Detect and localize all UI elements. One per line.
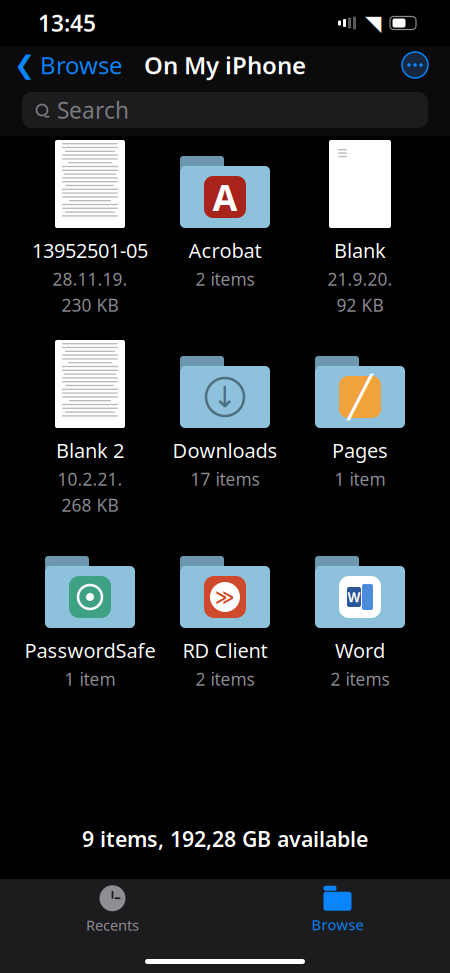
button[interactable]: Blank 2 — [22, 336, 157, 536]
staticText: 10.2.21. — [57, 468, 122, 491]
button[interactable]: PasswordSafe — [22, 536, 157, 736]
staticText: On My iPhone — [144, 49, 306, 81]
staticText: W — [347, 588, 360, 606]
staticText: Blank — [334, 237, 386, 264]
staticText: PasswordSafe — [24, 637, 155, 664]
staticText: Word — [335, 637, 385, 664]
staticText: RD Client — [182, 637, 267, 664]
staticText: Acrobat — [188, 237, 261, 264]
staticText: 17 items — [190, 468, 259, 491]
button[interactable]: A — [157, 136, 292, 336]
staticText: 2 items — [330, 668, 389, 691]
staticText: ↓ — [212, 380, 237, 414]
button[interactable]: More options — [402, 45, 450, 85]
staticText: 268 KB — [61, 494, 118, 517]
staticText: 13:45 — [38, 8, 96, 38]
staticText: 2 items — [195, 268, 254, 291]
staticText: Search — [57, 95, 129, 125]
staticText: Browse — [311, 915, 363, 934]
button[interactable]: ≫ — [157, 536, 292, 736]
staticText: 92 KB — [336, 294, 383, 317]
staticText: 2 items — [195, 668, 254, 691]
staticText: 21.9.20. — [327, 268, 392, 291]
staticText: 1 item — [334, 468, 385, 491]
staticText: A — [212, 173, 237, 221]
staticText: ≫ — [215, 586, 235, 608]
staticText: ╱ — [348, 374, 372, 420]
staticText: 13952501-05 — [32, 237, 148, 264]
staticText: Recents — [86, 915, 139, 935]
button[interactable]: ╱ — [292, 336, 427, 536]
staticText: Browse — [40, 49, 123, 81]
staticText: ❮ — [14, 51, 35, 79]
staticText: 1 item — [64, 668, 115, 691]
button[interactable]: Search — [22, 92, 428, 128]
staticText: 230 KB — [61, 294, 118, 317]
staticText: Downloads — [172, 437, 277, 464]
staticText: 28.11.19. — [52, 268, 127, 291]
button[interactable]: 13952501-05 — [22, 136, 157, 336]
button[interactable]: Recents — [56, 886, 168, 934]
button[interactable]: ❮ — [0, 42, 123, 88]
button[interactable]: W — [292, 536, 427, 736]
staticText: Blank 2 — [56, 437, 124, 464]
staticText: 9 items, 192,28 GB available — [82, 825, 368, 853]
staticText: ◥ — [365, 11, 381, 35]
button[interactable]: Blank — [292, 136, 427, 336]
button[interactable]: Browse — [281, 886, 393, 934]
staticText: Pages — [332, 437, 388, 464]
button[interactable]: ↓ — [157, 336, 292, 536]
